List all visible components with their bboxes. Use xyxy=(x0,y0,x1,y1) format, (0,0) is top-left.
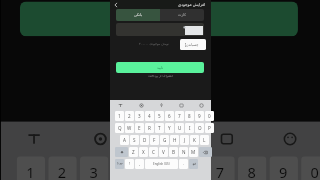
button[interactable]: 0 xyxy=(301,156,320,180)
button[interactable]: A xyxy=(120,135,129,145)
button[interactable]: Stickers xyxy=(194,122,257,153)
button[interactable]: ! xyxy=(125,159,134,169)
button[interactable]: Emoji xyxy=(257,122,320,153)
button[interactable]: 2 xyxy=(125,111,134,121)
button[interactable]: O xyxy=(195,123,204,133)
button[interactable]: S xyxy=(130,135,139,145)
button[interactable]: Clipboard xyxy=(110,100,131,110)
staticText: L xyxy=(203,137,206,143)
button[interactable]: K xyxy=(190,135,199,145)
button[interactable]: Y xyxy=(165,123,174,133)
button[interactable]: M xyxy=(189,147,198,157)
button[interactable]: 9 xyxy=(269,156,298,180)
staticText: بانکی xyxy=(134,13,143,17)
button[interactable]: N xyxy=(179,147,188,157)
button[interactable]: E xyxy=(135,123,144,133)
button[interactable]: 4 xyxy=(111,156,140,180)
button[interactable]: Clipboard xyxy=(1,122,67,153)
button[interactable]: Settings xyxy=(131,100,151,110)
button[interactable]: C xyxy=(149,147,158,157)
button[interactable]: . xyxy=(179,159,188,169)
staticText: 5 xyxy=(153,163,162,180)
button[interactable]: Shift xyxy=(115,147,128,157)
button[interactable]: 7 xyxy=(175,111,184,121)
button[interactable]: G xyxy=(160,135,169,145)
button[interactable]: 1 xyxy=(115,111,124,121)
staticText: X xyxy=(142,149,145,155)
button[interactable]: Voice input xyxy=(130,122,194,153)
staticText: 7 xyxy=(178,113,181,119)
staticText: Z xyxy=(132,149,135,155)
staticText: 4 xyxy=(121,163,130,180)
button[interactable]: 3 xyxy=(80,156,108,180)
button[interactable]: B xyxy=(169,147,178,157)
button[interactable]: 7 xyxy=(206,156,235,180)
button[interactable]: 8 xyxy=(238,156,266,180)
button[interactable]: تایید xyxy=(20,1,298,36)
staticText: افزایش موجودی xyxy=(178,2,206,7)
staticText: 7 xyxy=(216,163,225,180)
button[interactable]: J xyxy=(180,135,189,145)
button[interactable]: Enter xyxy=(189,159,198,169)
staticText: Y xyxy=(168,125,171,131)
button[interactable]: Backspace xyxy=(199,147,212,157)
button[interactable]: D xyxy=(140,135,149,145)
button[interactable]: H xyxy=(170,135,179,145)
staticText: S xyxy=(133,137,136,143)
staticText: 6 xyxy=(184,163,194,180)
button[interactable]: Z xyxy=(129,147,138,157)
button[interactable]: بانکی xyxy=(116,9,160,21)
button[interactable]: 6 xyxy=(165,111,174,121)
staticText: M xyxy=(191,149,196,155)
button[interactable]: L xyxy=(200,135,209,145)
button[interactable] xyxy=(116,23,204,36)
button[interactable]: X xyxy=(139,147,148,157)
staticText: P xyxy=(208,125,211,131)
button[interactable]: کارت xyxy=(160,9,204,21)
button[interactable]: چسباندن xyxy=(180,39,206,50)
staticText: 0 xyxy=(208,113,211,119)
staticText: D xyxy=(143,137,147,143)
staticText: H xyxy=(173,137,177,143)
staticText: B xyxy=(172,149,175,155)
button[interactable]: English (US) xyxy=(145,159,178,169)
button[interactable]: W xyxy=(125,123,134,133)
staticText: ?۱۲۳ xyxy=(117,162,123,166)
staticText: English (US) xyxy=(153,162,170,166)
button[interactable]: T xyxy=(155,123,164,133)
staticText: انصراف از پرداخت xyxy=(1,39,320,52)
button[interactable]: Stickers xyxy=(171,100,191,110)
button[interactable]: 3 xyxy=(135,111,144,121)
button[interactable]: V xyxy=(159,147,168,157)
button[interactable]: 4 xyxy=(145,111,154,121)
button[interactable]: 9 xyxy=(195,111,204,121)
staticText: 2 xyxy=(128,113,131,119)
button[interactable]: 0 xyxy=(205,111,214,121)
staticText: 2 xyxy=(58,163,67,180)
button[interactable]: 6 xyxy=(175,156,203,180)
button[interactable]: Back xyxy=(112,1,120,9)
button[interactable]: 8 xyxy=(185,111,194,121)
button[interactable]: P xyxy=(205,123,214,133)
staticText: ! xyxy=(129,161,131,167)
staticText: C xyxy=(152,149,155,155)
button[interactable]: 1 xyxy=(17,156,45,180)
button[interactable]: 2 xyxy=(48,156,77,180)
button[interactable]: Voice input xyxy=(151,100,171,110)
button[interactable]: Emoji xyxy=(191,100,211,110)
button[interactable]: U xyxy=(175,123,184,133)
button[interactable]: 5 xyxy=(155,111,164,121)
button[interactable]: F xyxy=(150,135,159,145)
staticText: R xyxy=(148,125,151,131)
button[interactable]: 5 xyxy=(143,156,171,180)
button[interactable]: R xyxy=(145,123,154,133)
button[interactable]: ?۱۲۳ xyxy=(115,159,124,169)
staticText: 4 xyxy=(148,113,151,119)
button[interactable]: I xyxy=(185,123,194,133)
button[interactable]: Settings xyxy=(67,122,130,153)
staticText: انصراف از پرداخت xyxy=(110,74,211,78)
button[interactable]: , xyxy=(135,159,144,169)
button[interactable]: Q xyxy=(115,123,124,133)
button[interactable]: تایید xyxy=(116,62,204,73)
staticText: . xyxy=(183,161,185,167)
